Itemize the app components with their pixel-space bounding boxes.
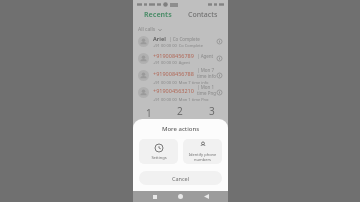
staticText: +91 00 00 00 Agent [153, 60, 190, 65]
button[interactable]: Home [176, 192, 185, 201]
staticText: All calls [138, 26, 156, 33]
staticText: 3 [209, 104, 215, 118]
staticText: 2 [177, 104, 183, 118]
staticText: +919004563210 [153, 87, 194, 94]
staticText: 1 [146, 106, 152, 120]
button[interactable]: Identify phone numbers [183, 139, 222, 164]
button[interactable]: Ariel [133, 33, 228, 50]
staticText: Recents [144, 10, 172, 20]
staticText: Cancel [172, 175, 190, 182]
staticText: | Agent [197, 53, 214, 59]
staticText: 5 [177, 122, 183, 136]
button[interactable]: Call details [216, 55, 223, 62]
button[interactable]: Call details [216, 38, 223, 45]
staticText: Settings [151, 155, 167, 160]
staticText: Identify phone numbers [183, 152, 222, 162]
button[interactable]: Recents [139, 9, 177, 21]
staticText: +91 00 00 00 Mon 1 time Png [153, 97, 209, 101]
button[interactable]: Call details [216, 89, 223, 96]
button[interactable]: +919004563210 [133, 84, 228, 101]
staticText: Contacts [188, 10, 218, 20]
staticText: Ariel [153, 35, 166, 42]
staticText: | Mon 1 time Png [197, 84, 216, 96]
staticText: +91 00 00 00 Co Complete [153, 43, 203, 48]
button[interactable]: Contacts [183, 9, 223, 21]
staticText: +91 00 00 00 Mon 7 time info [153, 80, 209, 84]
button[interactable]: 2 [164, 104, 196, 122]
button[interactable]: 3 [196, 104, 228, 122]
button[interactable]: 6 [196, 122, 228, 140]
button[interactable]: Back [202, 192, 211, 201]
button[interactable]: Recent apps [150, 192, 159, 201]
staticText: | Mon 7 time info [197, 67, 216, 79]
button[interactable]: 4 [133, 122, 164, 140]
button[interactable]: 1 [133, 104, 164, 122]
staticText: More actions [139, 125, 222, 133]
button[interactable]: +919008456789 [133, 50, 228, 67]
button[interactable]: 5 [164, 122, 196, 140]
staticText: +919008456789 [153, 52, 194, 59]
button[interactable]: +919008456788 [133, 67, 228, 84]
staticText: ABC [177, 118, 184, 122]
staticText: MNO [208, 136, 217, 140]
staticText: +919008456788 [153, 70, 194, 77]
button[interactable]: Call details [216, 72, 223, 79]
staticText: | Co Complete [169, 36, 200, 42]
button[interactable]: Cancel [139, 171, 222, 185]
button[interactable]: Settings [139, 139, 178, 164]
staticText: GHI [145, 136, 152, 140]
staticText: DEF [209, 118, 216, 122]
